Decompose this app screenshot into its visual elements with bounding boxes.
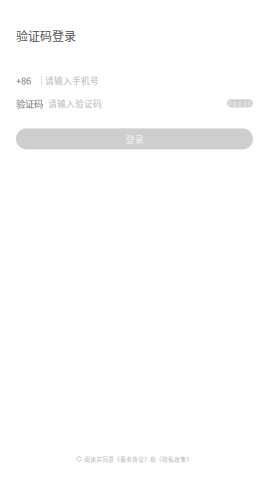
staticText: 请输入手机号: [45, 74, 99, 87]
button[interactable]: 同意协议: [77, 457, 81, 461]
staticText: 获取验证码: [227, 100, 252, 107]
staticText: 请输入验证码: [48, 97, 102, 110]
staticText: 登录: [125, 132, 143, 146]
staticText: +86: [16, 74, 31, 87]
staticText: 阅读并同意《服务协议》和《隐私政策》: [84, 455, 192, 463]
staticText: 验证码登录: [16, 27, 76, 44]
button[interactable]: 登录: [16, 128, 253, 149]
staticText: 验证码: [16, 97, 43, 110]
button[interactable]: 获取验证码: [227, 99, 253, 107]
